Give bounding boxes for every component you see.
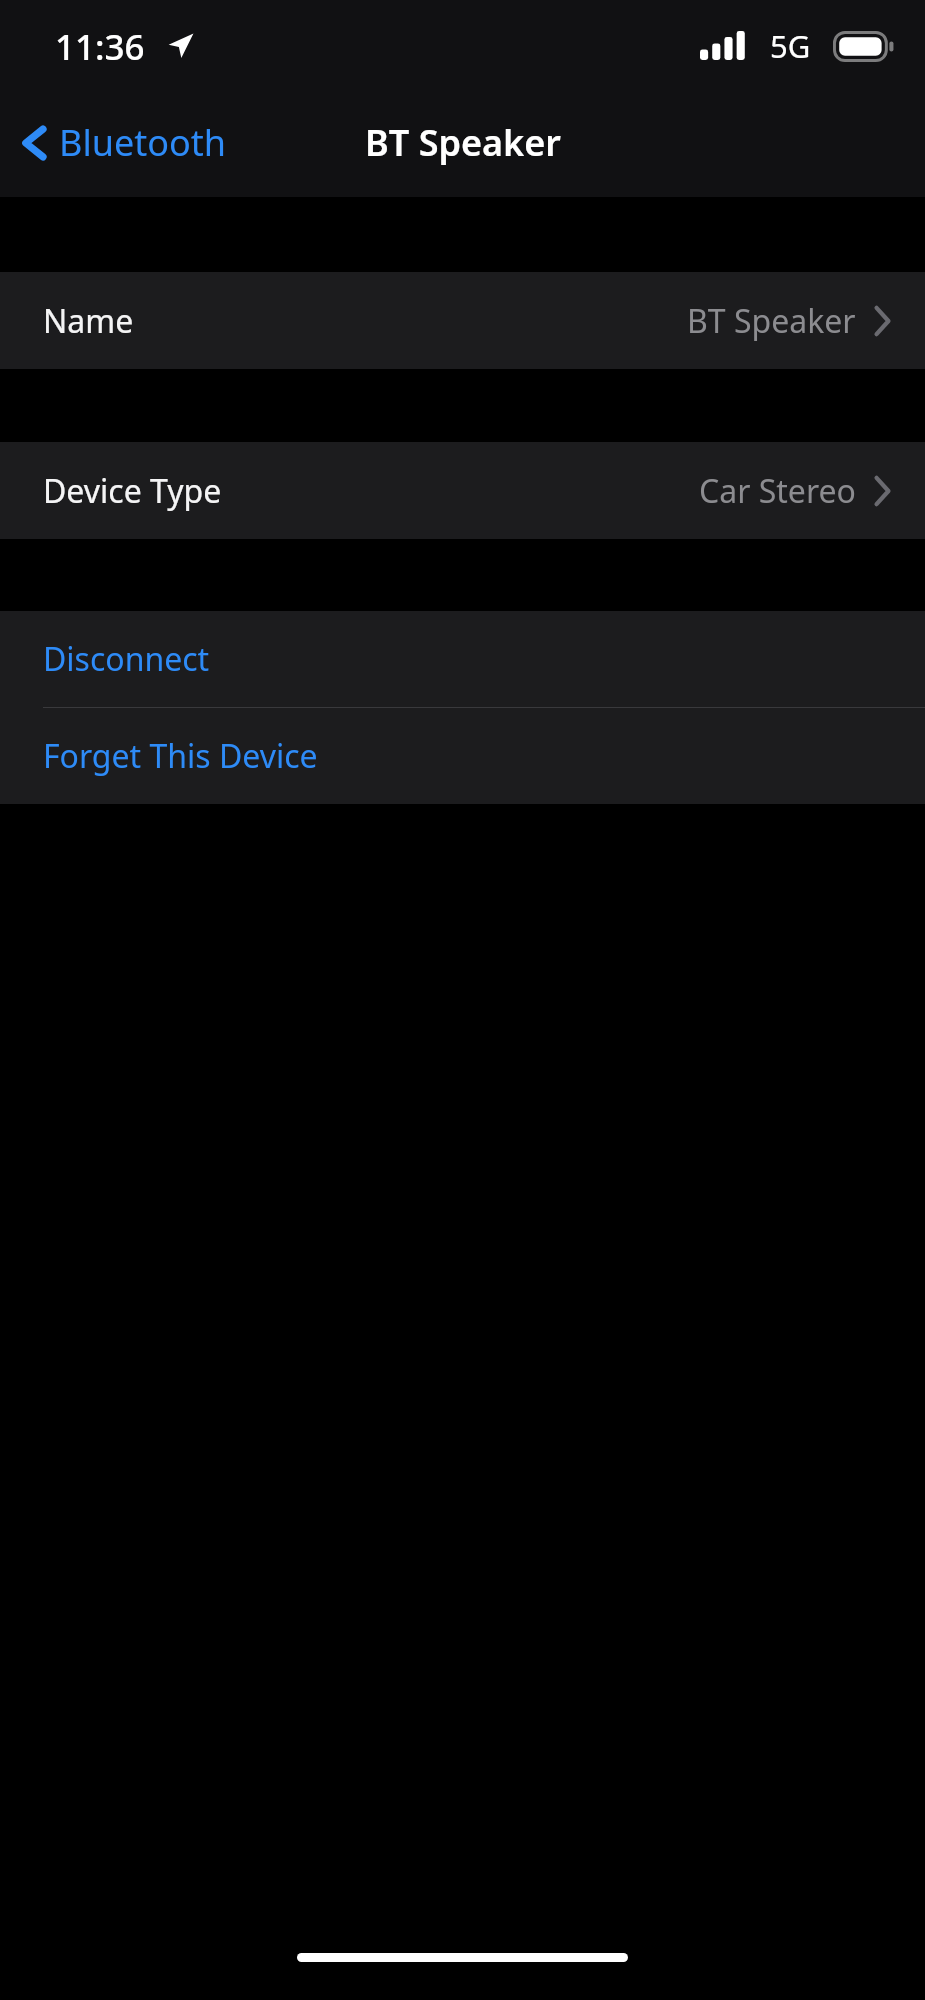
staticText: Car Stereo [699,469,856,513]
staticText: Bluetooth [59,118,227,167]
staticText: BT Speaker [687,299,856,343]
other: Location in use [167,32,194,59]
button[interactable]: Device Type, Car Stereo [0,442,925,539]
button[interactable]: Forget This Device [0,708,925,804]
other: Battery [833,31,896,62]
staticText: BT Speaker [365,118,561,167]
staticText: 5G [770,25,811,67]
staticText: 11:36 [55,23,145,71]
staticText: Name [43,299,134,343]
button[interactable]: Disconnect [0,611,925,707]
other: Cellular signal [700,31,757,60]
staticText: Device Type [43,469,222,513]
staticText: Forget This Device [43,734,318,778]
staticText: Disconnect [43,637,210,681]
button[interactable]: Bluetooth [0,102,247,183]
button[interactable]: Name, BT Speaker [0,272,925,369]
